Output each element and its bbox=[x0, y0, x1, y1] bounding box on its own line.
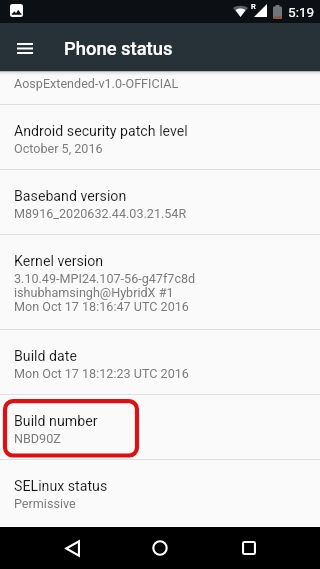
staticText: Phone status bbox=[64, 38, 173, 60]
button[interactable]: Recent apps bbox=[217, 527, 281, 569]
staticText: AospExtended-v1.0-OFFICIAL bbox=[14, 76, 179, 91]
button[interactable]: Kernel version bbox=[0, 235, 320, 329]
staticText: M8916_2020632.44.03.21.54R bbox=[14, 206, 187, 221]
button[interactable]: Back bbox=[40, 527, 104, 569]
button[interactable]: Baseband version bbox=[0, 170, 320, 234]
button[interactable]: AospExtended-v1.0-OFFICIAL bbox=[0, 71, 320, 104]
staticText: Build date bbox=[14, 348, 77, 365]
staticText: SELinux status bbox=[14, 478, 108, 495]
staticText: 5:19 bbox=[288, 4, 315, 20]
button[interactable]: SELinux status bbox=[0, 460, 320, 524]
staticText: Kernel version bbox=[14, 253, 104, 270]
button[interactable]: Open navigation drawer bbox=[0, 23, 48, 71]
staticText: Build number bbox=[14, 413, 98, 430]
staticText: NBD90Z bbox=[14, 431, 61, 446]
button[interactable]: Android security patch level bbox=[0, 105, 320, 169]
staticText: Android security patch level bbox=[14, 123, 188, 140]
button[interactable]: Build number bbox=[0, 395, 320, 459]
staticText: Baseband version bbox=[14, 188, 127, 205]
staticText: Mon Oct 17 18:12:23 UTC 2016 bbox=[14, 366, 189, 381]
button[interactable]: Home bbox=[128, 527, 192, 569]
staticText: October 5, 2016 bbox=[14, 141, 103, 156]
staticText: R bbox=[251, 2, 256, 11]
button[interactable]: Build date bbox=[0, 330, 320, 394]
staticText: Permissive bbox=[14, 496, 76, 511]
staticText: 3.10.49-MPI24.107-56-g47f7c8d ishubhamsi… bbox=[14, 271, 196, 314]
